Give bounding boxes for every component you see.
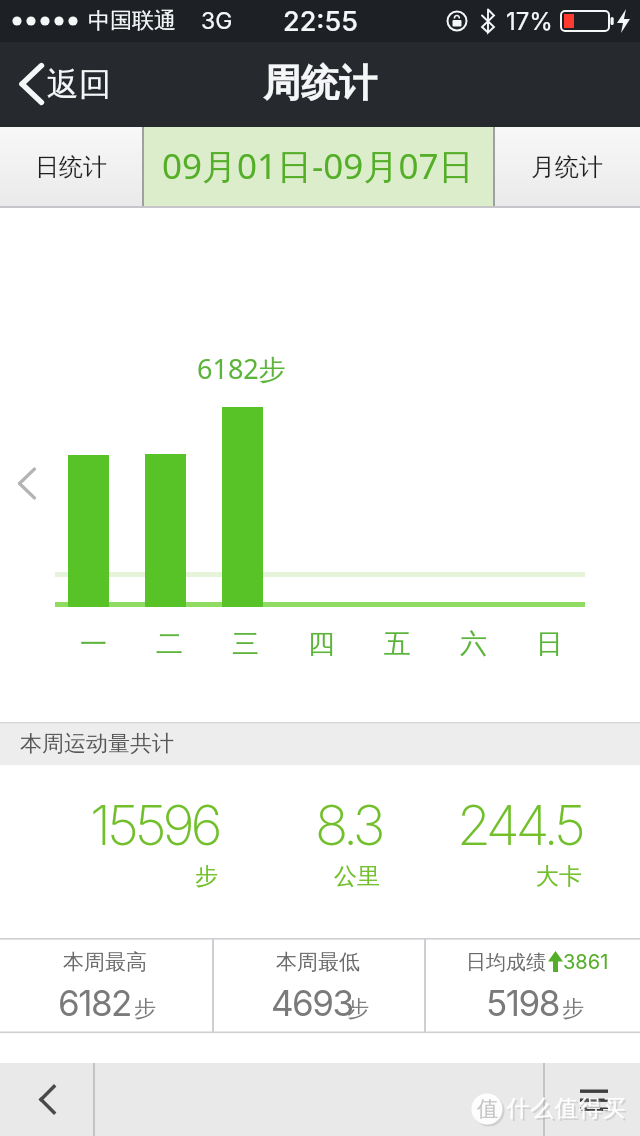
staticText: 步: [134, 995, 156, 1023]
staticText: 中国联通: [88, 7, 176, 35]
staticText: 本周运动量共计: [20, 730, 174, 758]
staticText: 一: [80, 627, 107, 661]
staticText: 返回: [47, 64, 111, 104]
staticText: 3G: [201, 7, 233, 35]
staticText: 3861: [563, 950, 609, 974]
staticText: 月统计: [531, 152, 603, 182]
staticText: 六: [460, 627, 487, 661]
staticText: 步: [562, 995, 584, 1023]
staticText: 公里: [334, 862, 380, 891]
staticText: 4693: [271, 982, 353, 1024]
staticText: 日均成绩: [466, 950, 546, 975]
staticText: 三: [232, 627, 259, 661]
staticText: 6182: [58, 982, 131, 1024]
staticText: 22:55: [283, 5, 358, 38]
staticText: 二: [156, 627, 183, 661]
staticText: 什么值得买: [506, 1094, 626, 1123]
staticText: 四: [308, 627, 335, 661]
staticText: 日: [536, 627, 563, 661]
staticText: 什么值得买: [508, 1096, 628, 1125]
staticText: 17%: [506, 7, 553, 36]
staticText: 步: [195, 862, 218, 891]
staticText: 15596: [90, 792, 219, 859]
staticText: 日统计: [35, 152, 107, 182]
staticText: 5198: [486, 982, 559, 1024]
staticText: 8.3: [315, 792, 382, 859]
staticText: 值: [477, 1096, 498, 1122]
staticText: 244.5: [457, 792, 582, 859]
staticText: 本周最高: [63, 949, 147, 975]
staticText: 五: [384, 627, 411, 661]
staticText: 大卡: [536, 862, 582, 891]
staticText: 周统计: [263, 59, 377, 107]
staticText: 步: [347, 995, 369, 1023]
staticText: 09月01日-09月07日: [162, 142, 474, 190]
staticText: 本周最低: [276, 949, 360, 975]
staticText: 6182步: [197, 350, 286, 387]
